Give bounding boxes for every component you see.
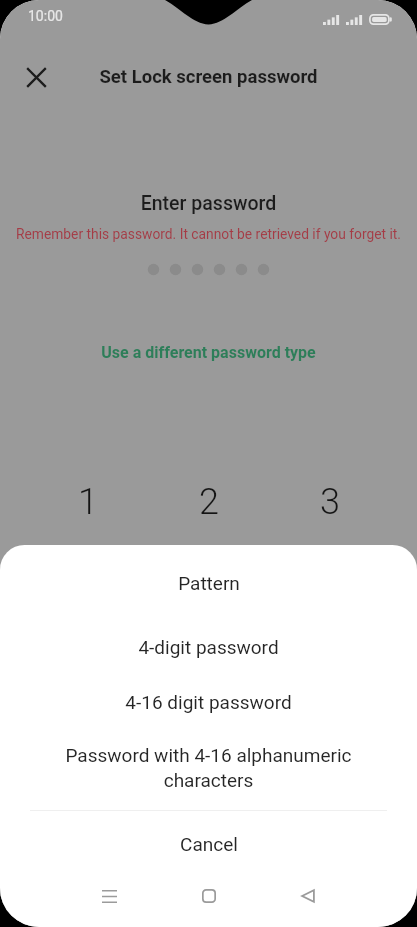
staticText: Password with 4-16 alphanumeric characte… xyxy=(48,744,369,791)
staticText: Enter password xyxy=(0,192,417,215)
staticText: 10:00 xyxy=(28,8,63,24)
staticText: 2 xyxy=(199,481,219,523)
button[interactable]: Pattern xyxy=(0,545,417,621)
button[interactable]: 4-16 digit password xyxy=(0,672,417,732)
button[interactable]: Use a different password type xyxy=(0,343,417,362)
staticText: Pattern xyxy=(178,572,240,594)
button[interactable]: Home xyxy=(187,874,231,918)
button[interactable]: Back xyxy=(286,874,330,918)
staticText: Cancel xyxy=(180,833,238,855)
staticText: Set Lock screen password xyxy=(0,66,417,88)
staticText: Remember this password. It cannot be ret… xyxy=(0,226,417,242)
staticText: 4-16 digit password xyxy=(125,691,292,713)
staticText: 1 xyxy=(78,481,98,523)
button[interactable]: Cancel xyxy=(0,811,417,876)
button[interactable]: Password with 4-16 alphanumeric characte… xyxy=(0,732,417,802)
button[interactable]: Close xyxy=(20,61,52,93)
staticText: 3 xyxy=(320,481,340,523)
button[interactable]: Recents xyxy=(87,874,131,918)
staticText: 4-digit password xyxy=(138,636,279,658)
button[interactable]: 4-digit password xyxy=(0,621,417,672)
